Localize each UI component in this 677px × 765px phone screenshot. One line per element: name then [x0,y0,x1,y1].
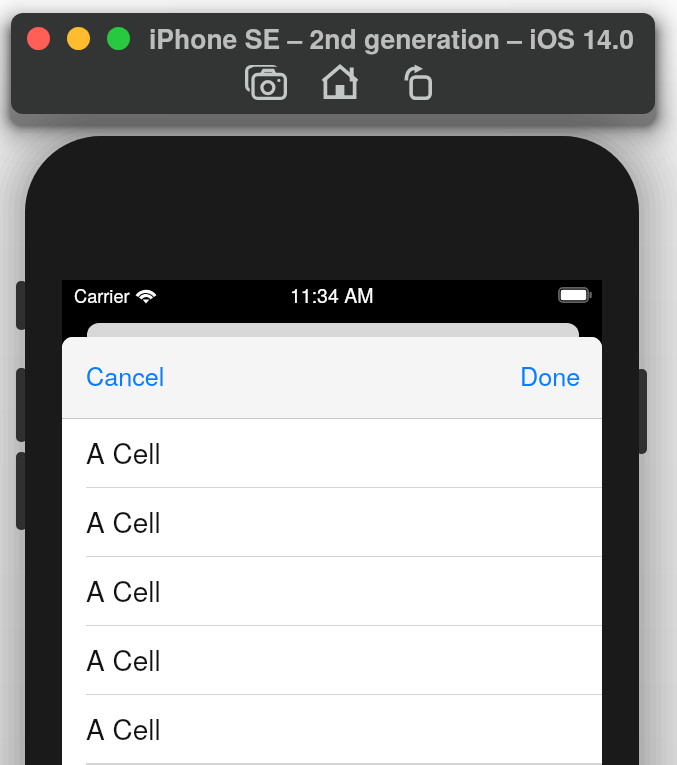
button[interactable]: Home [312,54,368,108]
button[interactable]: A Cell [62,695,602,764]
staticText: Done [520,357,581,393]
button[interactable]: A Cell [62,557,602,626]
staticText: 11:34 AM [290,281,374,309]
button[interactable]: Rotate [389,54,445,108]
button[interactable]: A Cell [62,419,602,488]
staticText: A Cell [86,570,161,610]
button[interactable]: Screenshot [238,55,294,109]
button[interactable]: Done [520,337,581,419]
staticText: Carrier [74,282,130,308]
staticText: A Cell [86,639,161,679]
button[interactable]: Minimise [67,27,90,50]
staticText: A Cell [86,501,161,541]
staticText: iPhone SE – 2nd generation – iOS 14.0 [149,19,634,57]
button[interactable]: A Cell [62,488,602,557]
button[interactable]: A Cell [62,764,602,765]
button[interactable]: A Cell [62,626,602,695]
staticText: A Cell [86,432,161,472]
staticText: A Cell [86,708,161,748]
button[interactable]: Zoom [107,27,130,50]
button[interactable]: Cancel [86,337,165,419]
staticText: Cancel [86,357,165,393]
button[interactable]: Close [27,27,50,50]
